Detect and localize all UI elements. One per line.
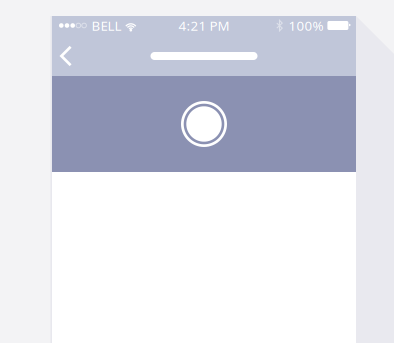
button[interactable]: Back bbox=[52, 36, 100, 76]
staticText: 100% bbox=[288, 17, 323, 34]
staticText: BELL bbox=[91, 17, 121, 34]
staticText: 4:21 PM bbox=[178, 17, 229, 34]
